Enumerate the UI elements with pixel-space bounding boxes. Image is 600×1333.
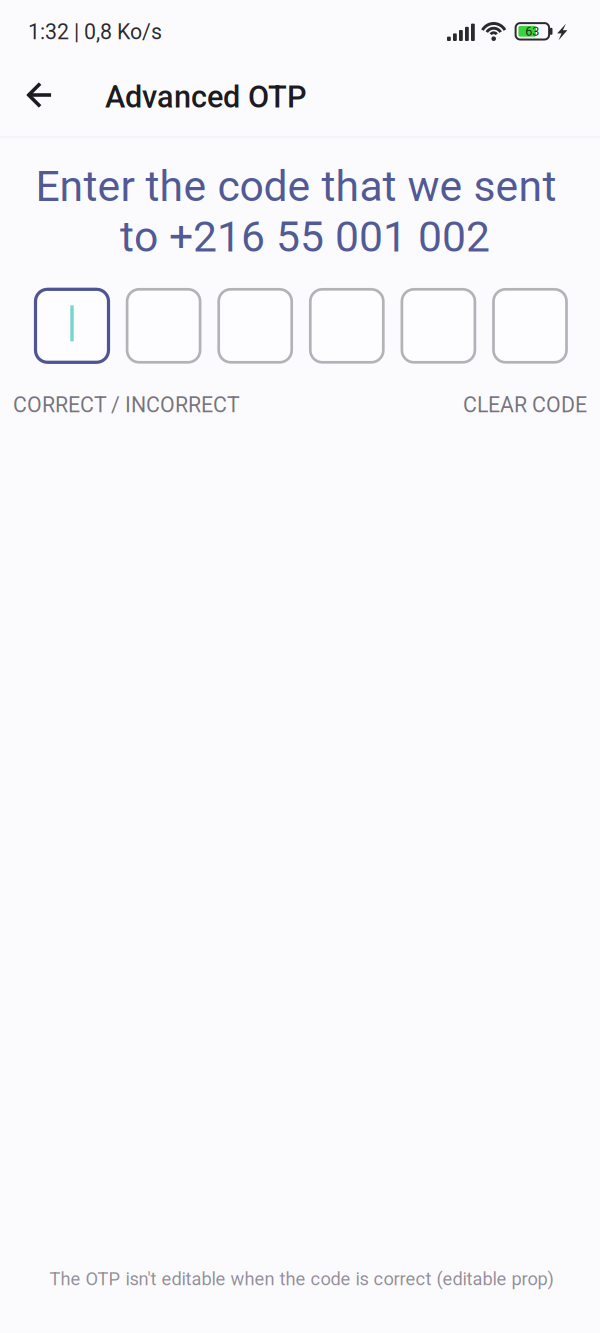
button[interactable]: CORRECT / INCORRECT [13,391,240,419]
staticText: to +216 55 001 002 [120,212,490,262]
staticText: CLEAR CODE [463,392,587,417]
button[interactable]: OTP digit [402,289,475,362]
staticText: Advanced OTP [105,79,307,115]
button[interactable]: OTP digit [493,289,566,362]
staticText: 63 [525,24,539,39]
button[interactable]: Back [9,65,69,125]
button[interactable]: OTP digit [310,289,383,362]
staticText: Enter the code that we sent [35,161,556,211]
staticText: CORRECT / INCORRECT [13,392,240,417]
button[interactable]: Advanced OTP [105,77,325,117]
button[interactable]: OTP digit [219,289,292,362]
staticText: The OTP isn't editable when the code is … [49,1268,553,1290]
button[interactable]: OTP digit [35,289,108,362]
button[interactable]: CLEAR CODE [463,391,587,419]
staticText: 1:32 | 0,8 Ko/s [28,19,162,44]
button[interactable]: OTP digit [127,289,200,362]
